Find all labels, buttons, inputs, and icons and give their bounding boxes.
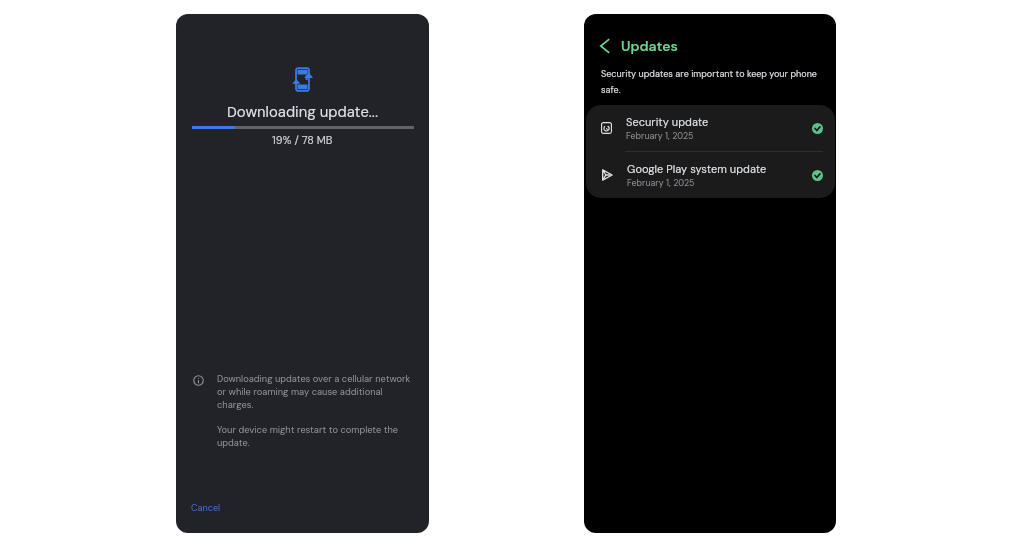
staticText: February 1, 2025 [626,130,694,141]
staticText: Security update [626,115,709,129]
other: System update [292,67,313,92]
staticText: Google Play system update [627,162,767,176]
staticText: Updates [621,37,678,55]
button[interactable]: Security update [586,105,835,151]
button[interactable]: Google Play system update [586,152,835,198]
staticText: 19% / 78 MB [272,133,333,147]
button[interactable]: Back [597,37,615,55]
staticText: Downloading updates over a cellular netw… [217,373,415,411]
staticText: Cancel [191,502,221,514]
staticText: Your device might restart to complete th… [217,424,415,449]
staticText: February 1, 2025 [627,177,695,188]
staticText: Downloading update... [227,102,379,121]
button[interactable]: Cancel [185,496,227,520]
staticText: Security updates are important to keep y… [601,68,823,96]
